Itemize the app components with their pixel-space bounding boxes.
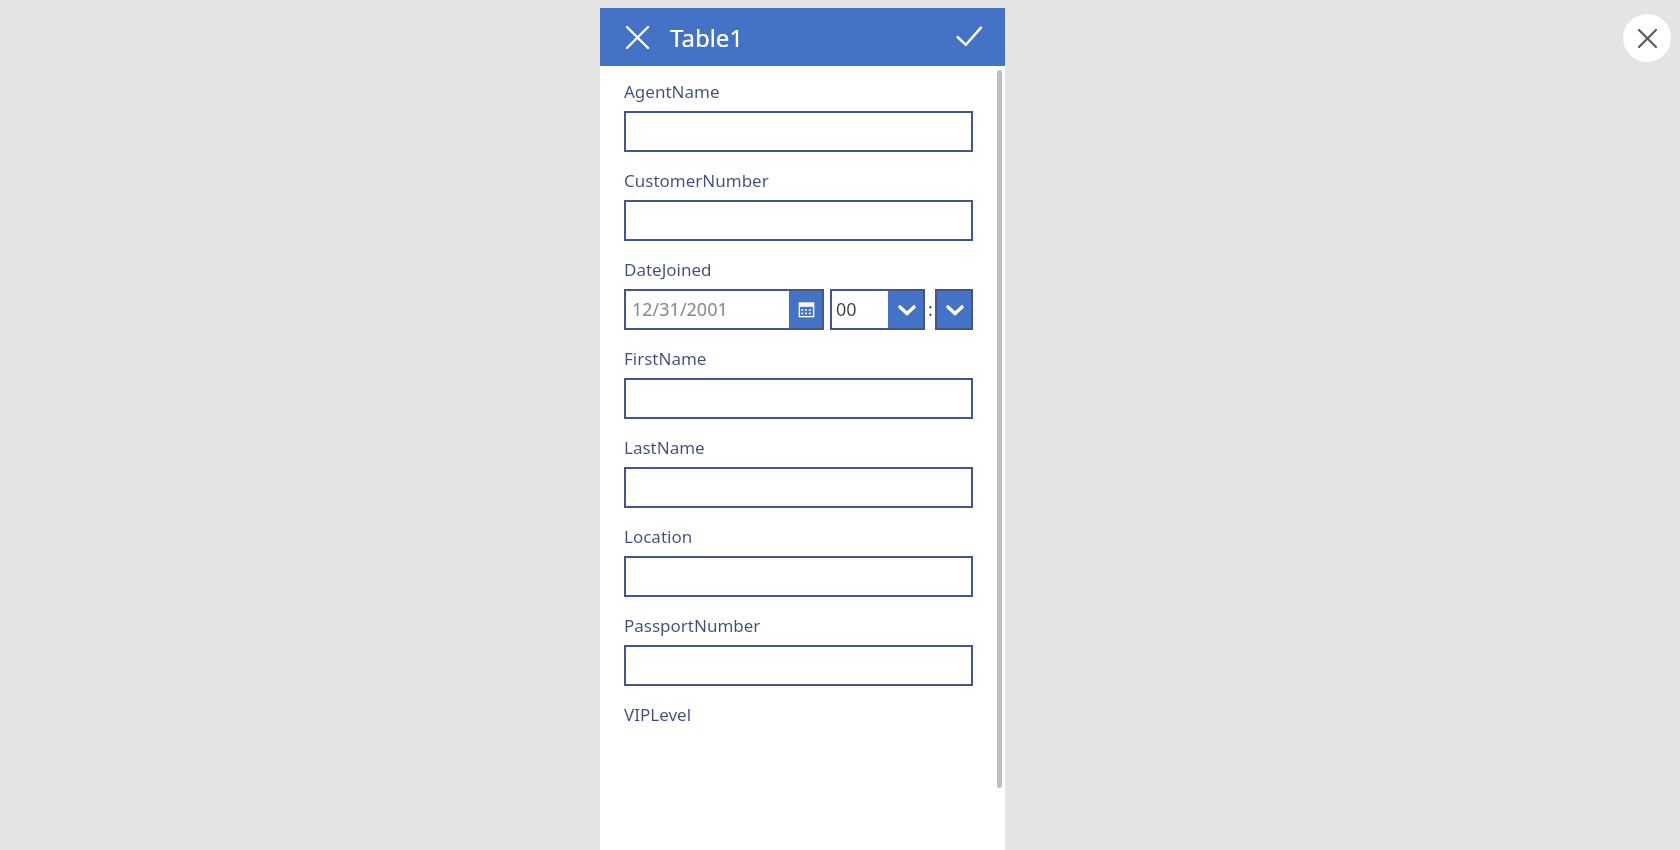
button[interactable]: 00 <box>935 289 973 330</box>
button[interactable]: Open date picker <box>789 289 824 330</box>
button[interactable]: Select hour <box>888 289 925 330</box>
button[interactable] <box>624 200 973 241</box>
button[interactable]: Cancel <box>618 18 656 56</box>
staticText: LastName <box>624 436 705 459</box>
staticText: PassportNumber <box>624 614 761 637</box>
button[interactable] <box>624 378 973 419</box>
button[interactable]: Save <box>949 17 989 57</box>
staticText: Table1 <box>670 21 744 54</box>
button[interactable] <box>624 467 973 508</box>
button[interactable]: Select minute <box>936 289 973 330</box>
button[interactable]: 00 <box>830 289 925 330</box>
button[interactable]: 12/31/2001 <box>624 289 824 330</box>
button[interactable] <box>624 556 973 597</box>
staticText: CustomerNumber <box>624 169 769 192</box>
staticText: : <box>928 297 933 322</box>
button[interactable]: Close <box>1623 14 1671 62</box>
staticText: 12/31/2001 <box>632 297 728 322</box>
button[interactable] <box>624 111 973 152</box>
staticText: AgentName <box>624 80 720 103</box>
button[interactable] <box>624 645 973 686</box>
staticText: FirstName <box>624 347 707 370</box>
staticText: Location <box>624 525 693 548</box>
staticText: DateJoined <box>624 258 712 281</box>
staticText: 00 <box>836 297 857 322</box>
staticText: VIPLevel <box>624 703 692 726</box>
